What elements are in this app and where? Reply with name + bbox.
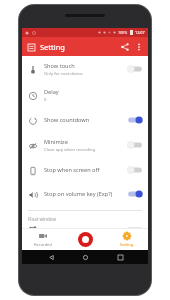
button[interactable]: Back [45, 251, 57, 263]
button[interactable]: More options [132, 40, 146, 54]
button[interactable]: Minimize [22, 132, 148, 158]
button[interactable]: Off [127, 227, 143, 228]
button[interactable]: Show touch [22, 56, 148, 82]
staticText: Setting [40, 42, 65, 52]
button[interactable]: Recent apps [114, 251, 126, 263]
staticText: 12:07 [135, 30, 145, 35]
staticText: 100% [118, 30, 128, 35]
button[interactable]: Off [127, 165, 143, 175]
staticText: Setting [120, 242, 134, 247]
staticText: Show countdown [44, 116, 90, 124]
button[interactable]: Floating window [22, 227, 148, 228]
staticText: Delay [44, 88, 59, 96]
staticText: Stop on volume key (Exp?) [44, 190, 113, 198]
staticText: Recorded [34, 242, 52, 247]
button[interactable]: Stop when screen off [22, 158, 148, 182]
button[interactable]: Delay [22, 82, 148, 108]
button[interactable]: On [127, 189, 143, 199]
staticText: Close app when recording [44, 147, 96, 153]
staticText: Float window [28, 216, 56, 222]
button[interactable]: Share [118, 40, 132, 54]
staticText: Only for root device [44, 71, 83, 77]
staticText: Stop when screen off [44, 166, 100, 174]
button[interactable]: Recorded [22, 228, 64, 250]
button[interactable]: Home [79, 251, 91, 263]
button[interactable]: Show countdown [22, 108, 148, 132]
staticText: Show touch [44, 62, 75, 70]
staticText: Minimize [44, 138, 68, 146]
button[interactable]: Off [127, 64, 143, 74]
button[interactable]: Menu [25, 41, 37, 53]
button[interactable]: Record [64, 228, 106, 250]
button[interactable]: Off [127, 140, 143, 150]
button[interactable]: Setting [106, 228, 148, 250]
button[interactable]: On [127, 115, 143, 125]
staticText: 0 [44, 97, 47, 103]
button[interactable]: Stop on volume key (Exp?) [22, 182, 148, 206]
